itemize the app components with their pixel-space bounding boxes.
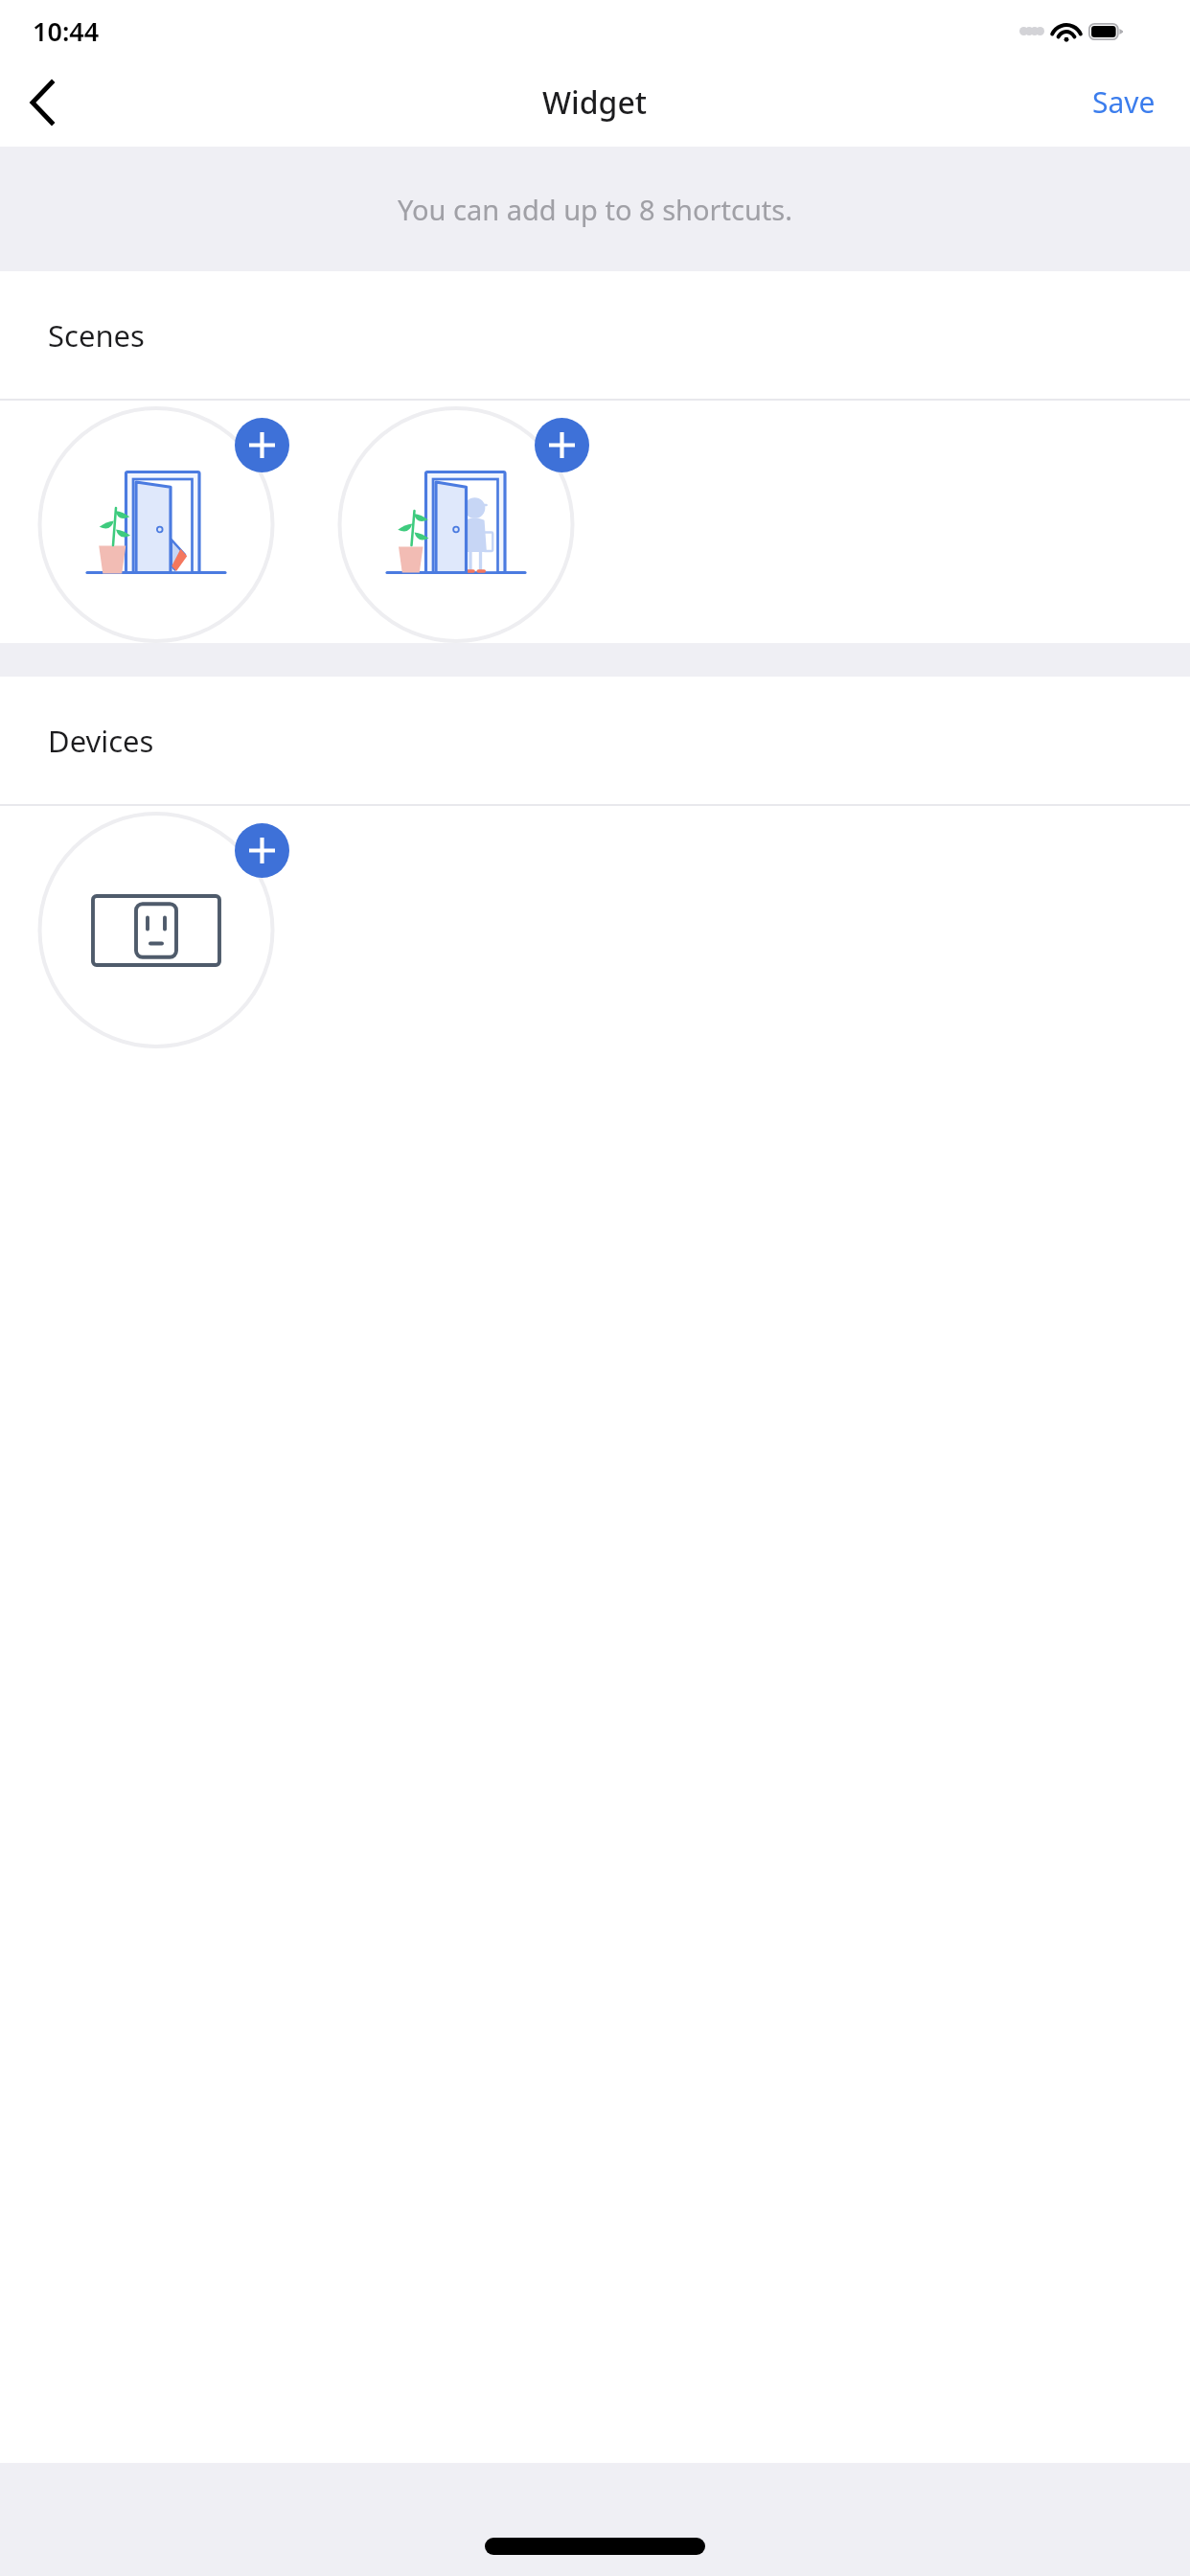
staticText: Save: [1092, 82, 1156, 122]
staticText: 10:44: [33, 13, 100, 49]
button[interactable]: Save: [1058, 67, 1190, 137]
staticText: Scenes: [48, 315, 145, 356]
button[interactable]: Add lamp: [235, 823, 289, 878]
staticText: Devices: [48, 721, 154, 761]
button[interactable]: Back: [0, 60, 84, 145]
button[interactable]: Add Away: [235, 418, 289, 472]
button[interactable]: Add Away: [6, 406, 306, 643]
button[interactable]: Add lamp: [6, 812, 306, 1048]
button[interactable]: Add Home: [306, 406, 606, 643]
staticText: Widget: [542, 81, 648, 124]
button[interactable]: Add Home: [535, 418, 589, 472]
staticText: You can add up to 8 shortcuts.: [398, 191, 792, 228]
